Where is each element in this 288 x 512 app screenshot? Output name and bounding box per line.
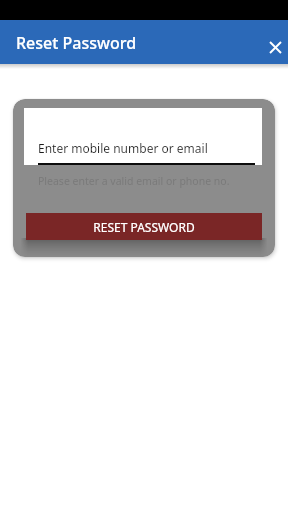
button[interactable]: Close: [257, 29, 288, 65]
staticText: Enter mobile number or email: [38, 140, 208, 156]
button[interactable]: RESET PASSWORD: [26, 213, 262, 240]
staticText: Please enter a valid email or phone no.: [38, 174, 230, 188]
staticText: Reset Password: [16, 32, 137, 54]
staticText: RESET PASSWORD: [93, 219, 195, 235]
button[interactable]: Enter mobile number or email: [24, 108, 262, 165]
